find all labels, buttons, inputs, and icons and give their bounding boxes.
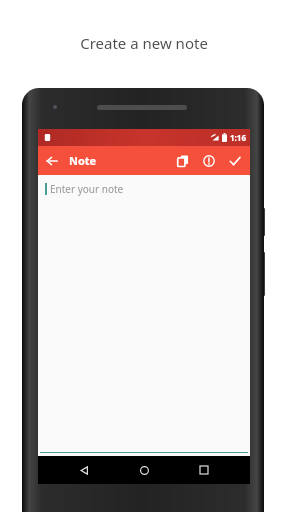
button[interactable]: Enter your note: [45, 182, 257, 196]
button[interactable]: Back: [70, 456, 98, 484]
staticText: 1:16: [230, 132, 246, 143]
button[interactable]: Copy: [170, 148, 196, 174]
button[interactable]: Home: [130, 456, 158, 484]
staticText: Note: [69, 153, 97, 168]
staticText: Enter your note: [50, 182, 124, 196]
button[interactable]: Save note: [222, 148, 248, 174]
button[interactable]: Info: [196, 148, 222, 174]
button[interactable]: Recent apps: [190, 456, 218, 484]
staticText: Create a new note: [0, 33, 288, 53]
button[interactable]: Navigate up: [38, 147, 66, 175]
